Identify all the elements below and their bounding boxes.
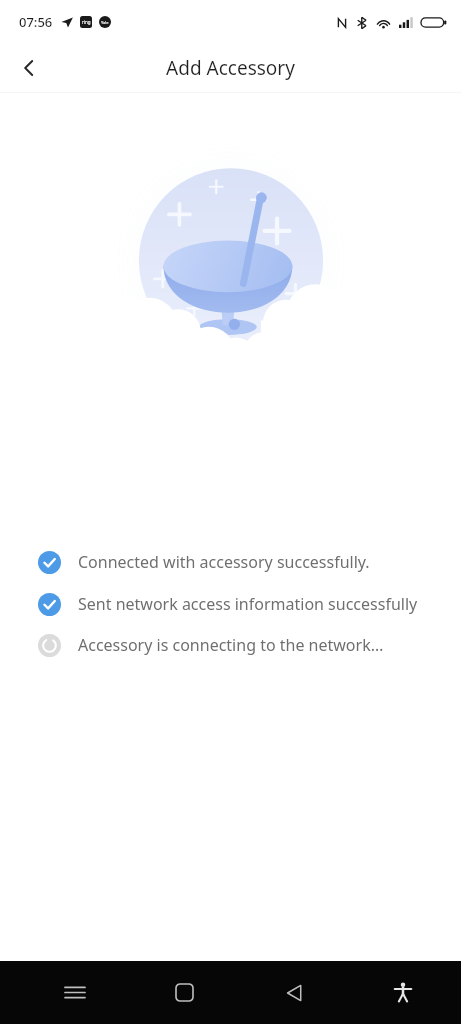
staticText: Add Accessory (166, 55, 295, 81)
button[interactable]: Recent apps (20, 961, 130, 1024)
staticText: Accessory is connecting to the network… (78, 634, 384, 656)
staticText: 07:56 (19, 13, 53, 31)
staticText: ring (82, 19, 91, 25)
staticText: Connected with accessory successfully. (78, 551, 370, 573)
staticText: Sent network access information successf… (78, 593, 418, 615)
button[interactable]: Sent network access information successf… (0, 592, 461, 616)
staticText: Yale (101, 20, 109, 25)
button[interactable]: Home (130, 961, 239, 1024)
button[interactable]: Connected with accessory successfully. (0, 550, 461, 574)
button[interactable]: Accessory is connecting to the network… (0, 633, 461, 657)
button[interactable]: Back (7, 46, 51, 90)
button[interactable]: Accessibility (348, 961, 457, 1024)
button[interactable]: Back (239, 961, 348, 1024)
